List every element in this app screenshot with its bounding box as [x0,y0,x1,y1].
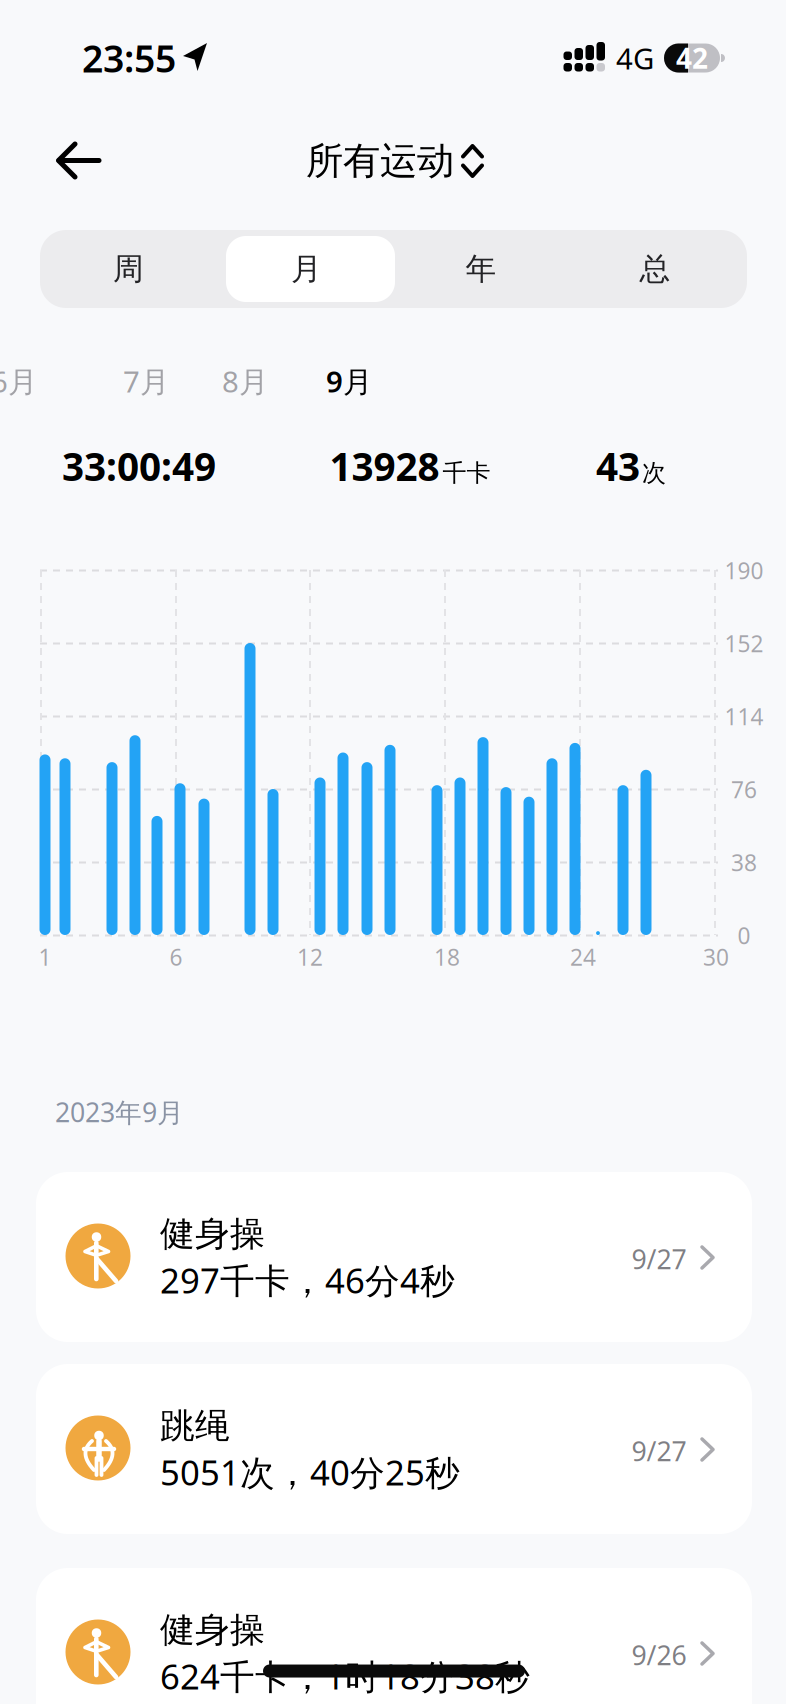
button[interactable]: 月 [218,230,394,308]
staticText: 0 [737,920,750,950]
staticText: 12 [297,942,323,972]
staticText: 23:55 [82,33,176,83]
staticText: 43 [596,440,640,492]
button[interactable]: 总 [567,230,743,308]
staticText: 33:00:49 [62,440,216,492]
staticText: 总 [639,250,670,288]
staticText: 152 [724,628,763,658]
button[interactable]: 所有运动 [306,138,482,184]
staticText: 跳绳 [160,1405,230,1447]
button[interactable]: 9月 [303,353,395,409]
staticText: 9/27 [631,1433,686,1469]
staticText: 114 [724,701,763,731]
button[interactable]: 周 [40,230,216,308]
staticText: 624千卡，1时18分38秒 [160,1653,530,1699]
staticText: 9月 [326,361,372,400]
staticText: 13928 [329,440,439,492]
staticText: 4G [616,38,654,77]
button[interactable]: 7月 [100,353,192,409]
staticText: 周 [113,250,144,288]
staticText: 24 [570,942,596,972]
staticText: 年 [465,250,496,288]
staticText: 1 [38,942,51,972]
button[interactable]: 6月 [0,353,60,409]
button[interactable]: 健身操 [36,1568,752,1704]
staticText: 8月 [222,361,268,400]
staticText: 6 [169,942,182,972]
staticText: 9/26 [631,1637,686,1673]
staticText: 月 [291,250,322,288]
staticText: 6月 [0,361,37,400]
staticText: 9/27 [631,1241,686,1277]
button[interactable]: 健身操 [36,1172,752,1342]
staticText: 76 [731,774,757,804]
staticText: 30 [703,942,729,972]
staticText: 健身操 [160,1213,265,1255]
staticText: 所有运动 [306,138,454,184]
staticText: 42 [676,39,708,77]
staticText: 千卡 [442,458,490,488]
staticText: 18 [434,942,460,972]
staticText: 2023年9月 [55,1094,184,1130]
staticText: 次 [642,458,666,488]
staticText: 7月 [123,361,169,400]
button[interactable]: 年 [393,230,569,308]
staticText: 健身操 [160,1609,265,1651]
staticText: 38 [731,847,757,877]
staticText: 297千卡，46分4秒 [160,1257,455,1303]
button[interactable]: Back [42,124,114,196]
button[interactable]: 跳绳 [36,1364,752,1534]
staticText: 5051次，40分25秒 [160,1449,460,1495]
button[interactable]: 8月 [199,353,291,409]
staticText: 190 [724,555,763,585]
